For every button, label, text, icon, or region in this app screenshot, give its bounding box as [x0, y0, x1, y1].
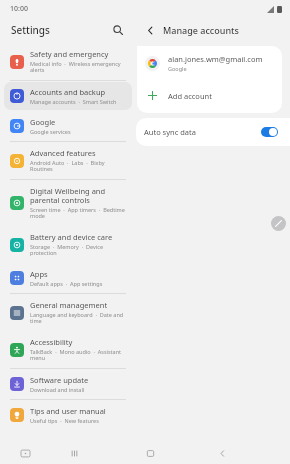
staticText: Default apps · App settings: [30, 280, 103, 287]
button[interactable]: Battery and device care: [4, 227, 132, 262]
staticText: Digital Wellbeing and parental controls: [30, 186, 128, 205]
staticText: Advanced features: [30, 148, 96, 158]
staticText: Download and install: [30, 386, 85, 393]
staticText: Google: [30, 117, 56, 127]
button[interactable]: Software update: [4, 370, 132, 398]
staticText: Apps: [30, 269, 48, 279]
button[interactable]: Back: [140, 20, 160, 40]
staticText: Google: [168, 65, 187, 72]
staticText: Manage accounts · Smart Switch: [30, 98, 117, 105]
button[interactable]: Digital Wellbeing and parental controls: [4, 181, 132, 225]
staticText: Manage accounts: [163, 24, 239, 36]
button[interactable]: Home: [141, 444, 159, 462]
staticText: 10:00: [10, 4, 28, 14]
button[interactable]: Recent apps: [16, 444, 34, 462]
button[interactable]: Overview: [65, 444, 83, 462]
button[interactable]: Safety and emergency: [4, 44, 132, 79]
staticText: alan.jones.wm@gmail.com: [168, 54, 263, 64]
button[interactable]: Accessibility: [4, 332, 132, 367]
staticText: Add account: [168, 91, 212, 101]
button[interactable]: Search: [108, 20, 128, 40]
staticText: Accounts and backup: [30, 87, 106, 97]
button[interactable]: Add account: [137, 80, 282, 113]
staticText: General management: [30, 300, 108, 310]
staticText: Language and keyboard · Date and time: [30, 311, 128, 325]
button[interactable]: General management: [4, 295, 132, 330]
staticText: Safety and emergency: [30, 49, 109, 59]
staticText: Storage · Memory · Device protection: [30, 243, 128, 257]
staticText: Battery and device care: [30, 232, 113, 242]
staticText: Android Auto · Labs · Bixby Routines: [30, 159, 128, 173]
button[interactable]: Resize panes: [271, 216, 286, 231]
staticText: Settings: [11, 23, 50, 37]
staticText: Medical info · Wireless emergency alerts: [30, 60, 128, 74]
staticText: Screen time · App timers · Bedtime mode: [30, 206, 128, 220]
staticText: Tips and user manual: [30, 406, 106, 416]
staticText: Accessibility: [30, 337, 73, 347]
button[interactable]: Back: [213, 444, 231, 462]
staticText: TalkBack · Mono audio · Assistant menu: [30, 348, 128, 362]
button[interactable]: Accounts and backup: [4, 82, 132, 110]
button[interactable]: Apps: [4, 264, 132, 292]
button[interactable]: Google: [4, 112, 132, 140]
button[interactable]: Auto sync data: [136, 118, 290, 146]
button[interactable]: alan.jones.wm@gmail.com: [137, 46, 282, 80]
staticText: Google services: [30, 128, 71, 135]
staticText: Useful tips · New features: [30, 417, 99, 424]
button[interactable]: Tips and user manual: [4, 401, 132, 429]
button[interactable]: Advanced features: [4, 143, 132, 178]
staticText: Software update: [30, 375, 89, 385]
staticText: Auto sync data: [144, 127, 196, 137]
